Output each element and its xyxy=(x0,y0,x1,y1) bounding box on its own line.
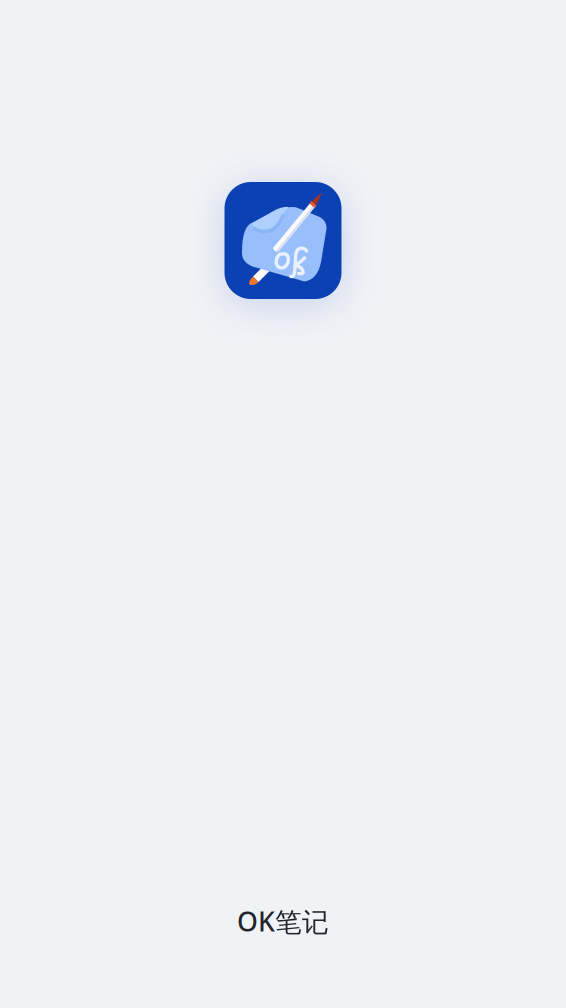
staticText: OK笔记 xyxy=(237,903,329,939)
